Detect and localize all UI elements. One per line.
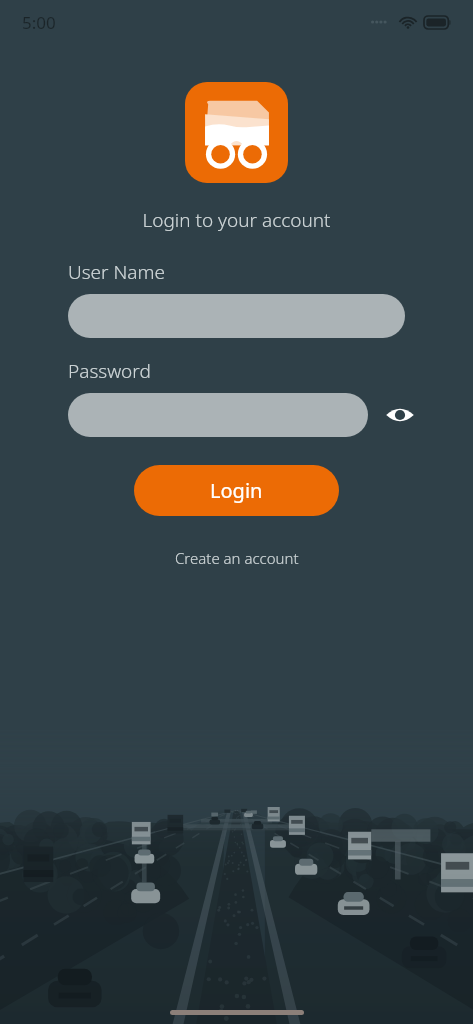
button[interactable] — [68, 294, 405, 338]
staticText: User Name — [68, 259, 165, 285]
staticText: 5:00 — [22, 11, 56, 34]
staticText: Create an account — [175, 548, 299, 568]
staticText: Login to your account — [142, 207, 331, 233]
button[interactable]: Show password — [382, 397, 418, 433]
staticText: Password — [68, 358, 151, 384]
button[interactable]: Create an account — [167, 544, 307, 572]
staticText: Login — [210, 477, 263, 504]
button[interactable] — [68, 393, 368, 437]
button[interactable]: Login — [134, 465, 339, 516]
